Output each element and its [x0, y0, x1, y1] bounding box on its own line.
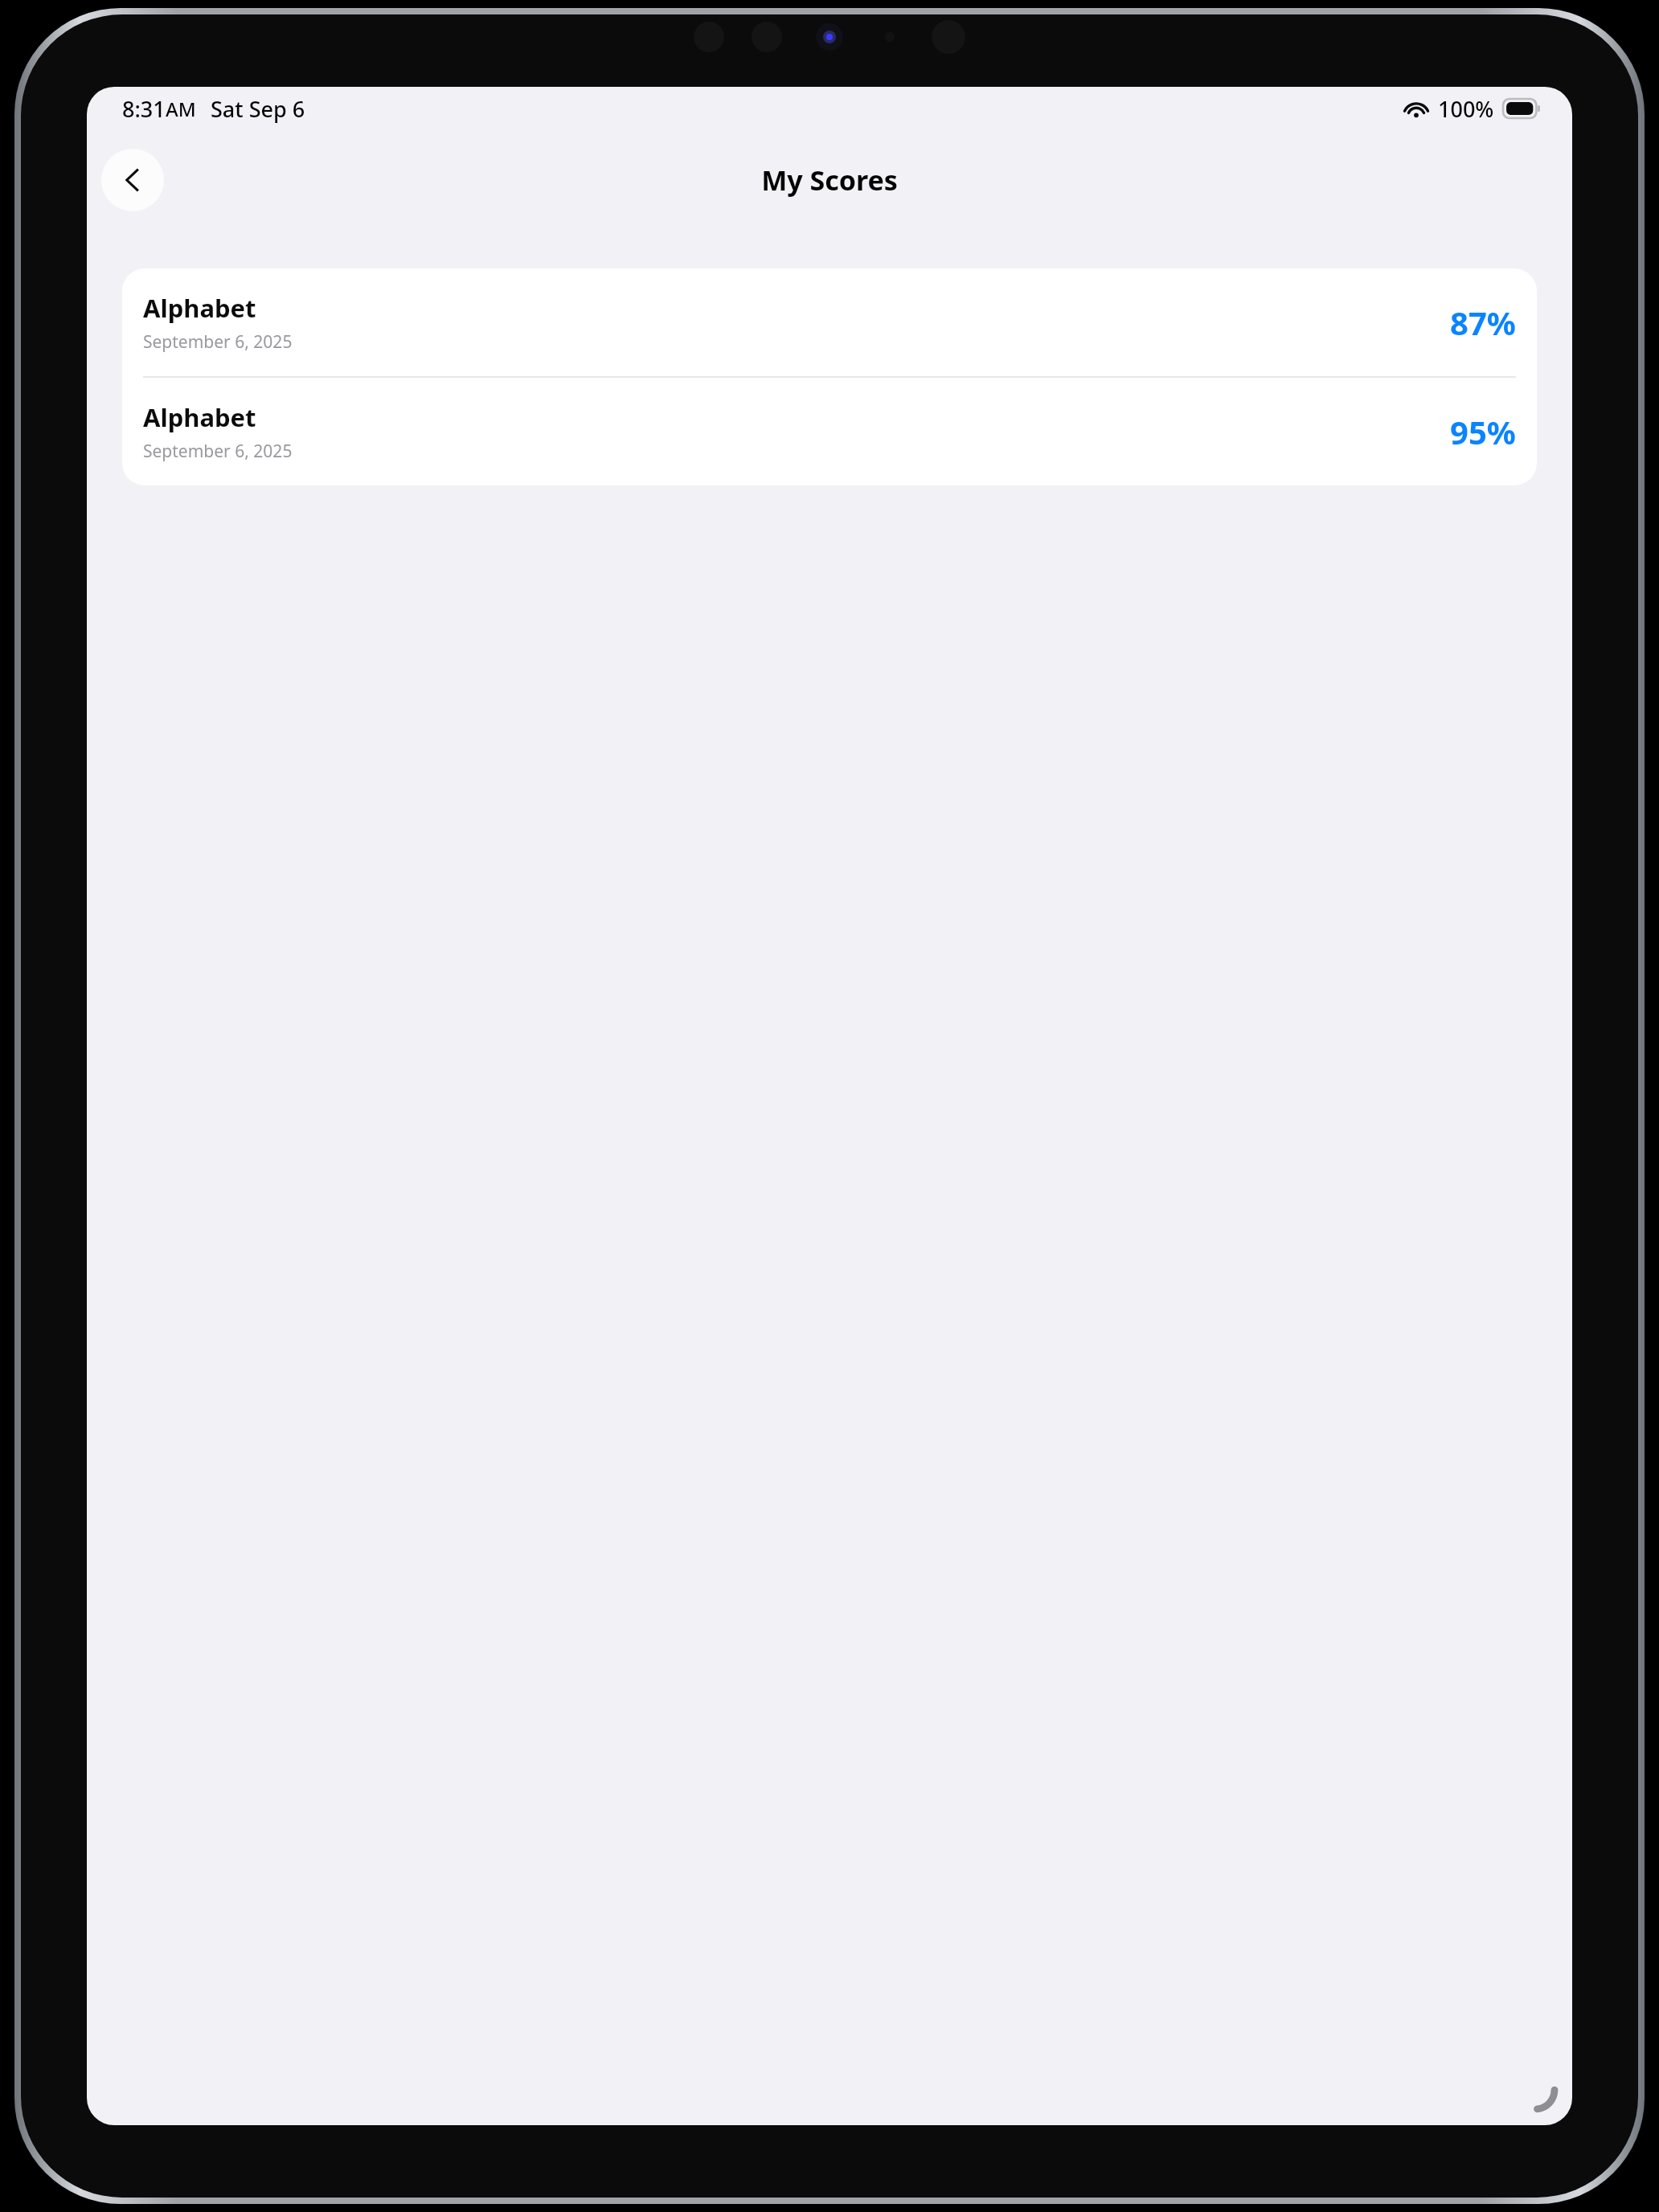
- staticText: Alphabet: [143, 400, 256, 434]
- staticText: 8:31: [122, 94, 166, 124]
- button[interactable]: Alphabet: [122, 378, 1537, 485]
- staticText: September 6, 2025: [143, 440, 293, 463]
- staticText: September 6, 2025: [143, 330, 293, 354]
- staticText: Alphabet: [143, 291, 256, 325]
- staticText: 87%: [1450, 301, 1516, 344]
- staticText: 100%: [1438, 94, 1494, 124]
- staticText: Sat Sep 6: [211, 94, 305, 124]
- button[interactable]: Alphabet: [122, 268, 1537, 376]
- staticText: AM: [166, 96, 196, 122]
- staticText: 95%: [1450, 410, 1516, 453]
- staticText: My Scores: [761, 162, 898, 199]
- button[interactable]: Back: [101, 149, 164, 211]
